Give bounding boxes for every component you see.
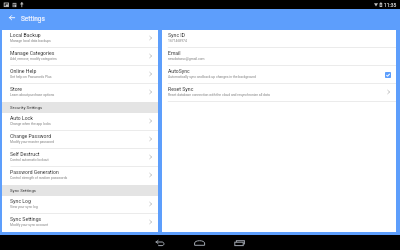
button[interactable]: Home xyxy=(180,235,220,250)
button[interactable]: Reset Sync xyxy=(162,84,396,102)
staticText: Online Help xyxy=(10,68,37,74)
button[interactable]: Sync Settings xyxy=(2,214,158,232)
staticText: Add, remove, modify categories xyxy=(10,57,57,61)
staticText: Control automatic lockout xyxy=(10,158,49,162)
staticText: Password Generation xyxy=(10,169,59,175)
staticText: Control strength of random passwords xyxy=(10,176,68,180)
staticText: Reset Sync xyxy=(168,86,194,92)
button[interactable]: Sync ID xyxy=(162,30,396,48)
button[interactable]: Change Password xyxy=(2,131,158,149)
staticText: Reset database connection with the cloud… xyxy=(168,93,270,97)
button[interactable]: Store xyxy=(2,84,158,102)
staticText: Sync Log xyxy=(10,198,31,204)
staticText: Sync Settings xyxy=(10,216,42,222)
staticText: Modify your sync account xyxy=(10,223,49,227)
staticText: Get help on Passwords Plus xyxy=(10,75,52,79)
button[interactable]: Local Backup xyxy=(2,30,158,48)
staticText: AutoSync xyxy=(168,68,190,74)
button[interactable]: Sync Log xyxy=(2,196,158,214)
staticText: Auto Lock xyxy=(10,115,33,121)
staticText: Learn about purchase options xyxy=(10,93,55,97)
staticText: 11:35 xyxy=(384,2,397,8)
staticText: Modify your master password xyxy=(10,140,55,144)
staticText: Sync Settings xyxy=(10,188,36,193)
button[interactable]: Back xyxy=(4,7,19,28)
staticText: Security Settings xyxy=(10,105,43,110)
button[interactable]: Back xyxy=(140,235,180,250)
button[interactable]: Online Help xyxy=(2,66,158,84)
button[interactable]: Email xyxy=(162,48,396,66)
staticText: Change Password xyxy=(10,133,52,139)
staticText: newdatasvc@gmail.com xyxy=(168,57,205,61)
staticText: Automatically sync and back up changes i… xyxy=(168,75,256,79)
staticText: Settings xyxy=(21,15,45,23)
button[interactable]: Manage Categories xyxy=(2,48,158,66)
staticText: 1671468974 xyxy=(168,39,187,43)
staticText: Manage Categories xyxy=(10,50,55,56)
button[interactable]: Auto Lock xyxy=(2,113,158,131)
staticText: Manage local data backups xyxy=(10,39,51,43)
staticText: Self Destruct xyxy=(10,151,40,157)
button[interactable]: Recent apps xyxy=(220,235,260,250)
button[interactable]: Self Destruct xyxy=(2,149,158,167)
staticText: Change when the app locks xyxy=(10,122,51,126)
staticText: Sync ID xyxy=(168,32,186,38)
button[interactable]: Password Generation xyxy=(2,167,158,185)
staticText: View your sync log xyxy=(10,205,38,209)
staticText: Local Backup xyxy=(10,32,41,38)
staticText: Store xyxy=(10,86,23,92)
button[interactable]: AutoSync xyxy=(162,66,396,84)
staticText: Email xyxy=(168,50,181,56)
